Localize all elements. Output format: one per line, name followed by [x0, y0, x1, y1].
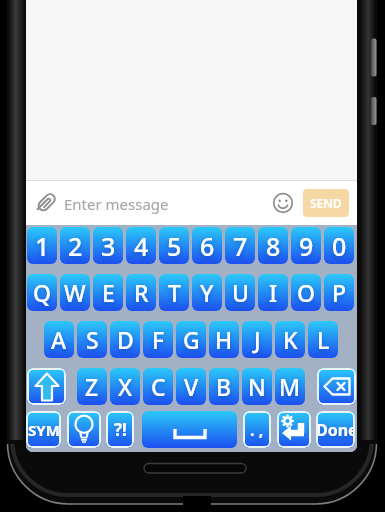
staticText: F	[152, 324, 165, 355]
button[interactable]: 1	[27, 227, 57, 264]
button[interactable]: B	[209, 368, 239, 405]
staticText: U	[232, 277, 249, 308]
staticText: ?!	[114, 418, 127, 441]
staticText: 6	[200, 229, 215, 263]
staticText: SYM	[28, 420, 60, 440]
button[interactable]: E	[93, 274, 123, 311]
button[interactable]: SYM	[26, 411, 61, 448]
staticText: 4	[134, 229, 149, 263]
staticText: N	[248, 371, 266, 402]
staticText: M	[279, 371, 301, 402]
button[interactable]: Y	[192, 274, 222, 311]
staticText: T	[168, 277, 181, 308]
staticText: Q	[33, 277, 52, 308]
staticText: 2	[68, 229, 83, 263]
staticText: B	[216, 371, 232, 402]
staticText: W	[64, 277, 86, 308]
staticText: Enter message	[64, 194, 169, 214]
button[interactable]: 5	[159, 227, 189, 264]
staticText: E	[102, 277, 115, 308]
button[interactable]: A	[44, 321, 74, 358]
staticText: . ,	[250, 419, 264, 441]
button[interactable]: X	[110, 368, 140, 405]
button[interactable]: P	[324, 274, 354, 311]
staticText: Done	[316, 419, 355, 441]
button[interactable]: L	[308, 321, 338, 358]
button[interactable]: N	[242, 368, 272, 405]
button[interactable]: M	[275, 368, 305, 405]
staticText: 7	[233, 229, 248, 263]
staticText: Y	[200, 277, 214, 308]
button[interactable]: Done	[316, 411, 355, 448]
button[interactable]: Z	[77, 368, 107, 405]
button[interactable]: F	[143, 321, 173, 358]
button[interactable]: V	[176, 368, 206, 405]
button[interactable]	[142, 411, 237, 448]
button[interactable]	[271, 191, 295, 215]
button[interactable]: I	[258, 274, 288, 311]
button[interactable]: S	[77, 321, 107, 358]
staticText: S	[86, 324, 99, 355]
button[interactable]: 4	[126, 227, 156, 264]
staticText: 8	[266, 229, 281, 263]
staticText: 9	[299, 229, 314, 263]
button[interactable]: O	[291, 274, 321, 311]
button[interactable]: 3	[93, 227, 123, 264]
staticText: J	[254, 324, 261, 355]
button[interactable]: ?!	[106, 411, 134, 448]
button[interactable]: G	[176, 321, 206, 358]
button[interactable]: 8	[258, 227, 288, 264]
button[interactable]: K	[275, 321, 305, 358]
button[interactable]: J	[242, 321, 272, 358]
button[interactable]: T	[159, 274, 189, 311]
button[interactable]: R	[126, 274, 156, 311]
button[interactable]: 2	[60, 227, 90, 264]
button[interactable]: 0	[324, 227, 354, 264]
staticText: I	[269, 277, 278, 308]
staticText: G	[183, 324, 200, 355]
button[interactable]: 9	[291, 227, 321, 264]
staticText: 1	[35, 229, 50, 263]
staticText: SEND	[310, 195, 342, 211]
staticText: X	[118, 371, 133, 402]
staticText: 3	[101, 229, 116, 263]
button[interactable]: 6	[192, 227, 222, 264]
button[interactable]	[27, 368, 66, 405]
staticText: V	[184, 371, 199, 402]
staticText: A	[51, 324, 67, 355]
button[interactable]: Q	[27, 274, 57, 311]
staticText: K	[283, 324, 298, 355]
button[interactable]: D	[110, 321, 140, 358]
button[interactable]: 7	[225, 227, 255, 264]
staticText: 0	[332, 229, 347, 263]
staticText: H	[215, 324, 233, 355]
button[interactable]: SEND	[303, 189, 349, 217]
staticText: P	[332, 277, 347, 308]
button[interactable]	[33, 190, 59, 216]
staticText: O	[297, 277, 316, 308]
button[interactable]	[317, 368, 356, 405]
staticText: Z	[85, 371, 99, 402]
staticText: D	[117, 324, 134, 355]
button[interactable]: W	[60, 274, 90, 311]
button[interactable]: C	[143, 368, 173, 405]
button[interactable]: U	[225, 274, 255, 311]
button[interactable]	[67, 411, 101, 448]
staticText: C	[151, 371, 166, 402]
button[interactable]: . ,	[243, 411, 271, 448]
button[interactable]: H	[209, 321, 239, 358]
button[interactable]	[277, 411, 311, 448]
staticText: L	[317, 324, 330, 355]
staticText: R	[134, 277, 149, 308]
staticText: 5	[167, 229, 182, 263]
